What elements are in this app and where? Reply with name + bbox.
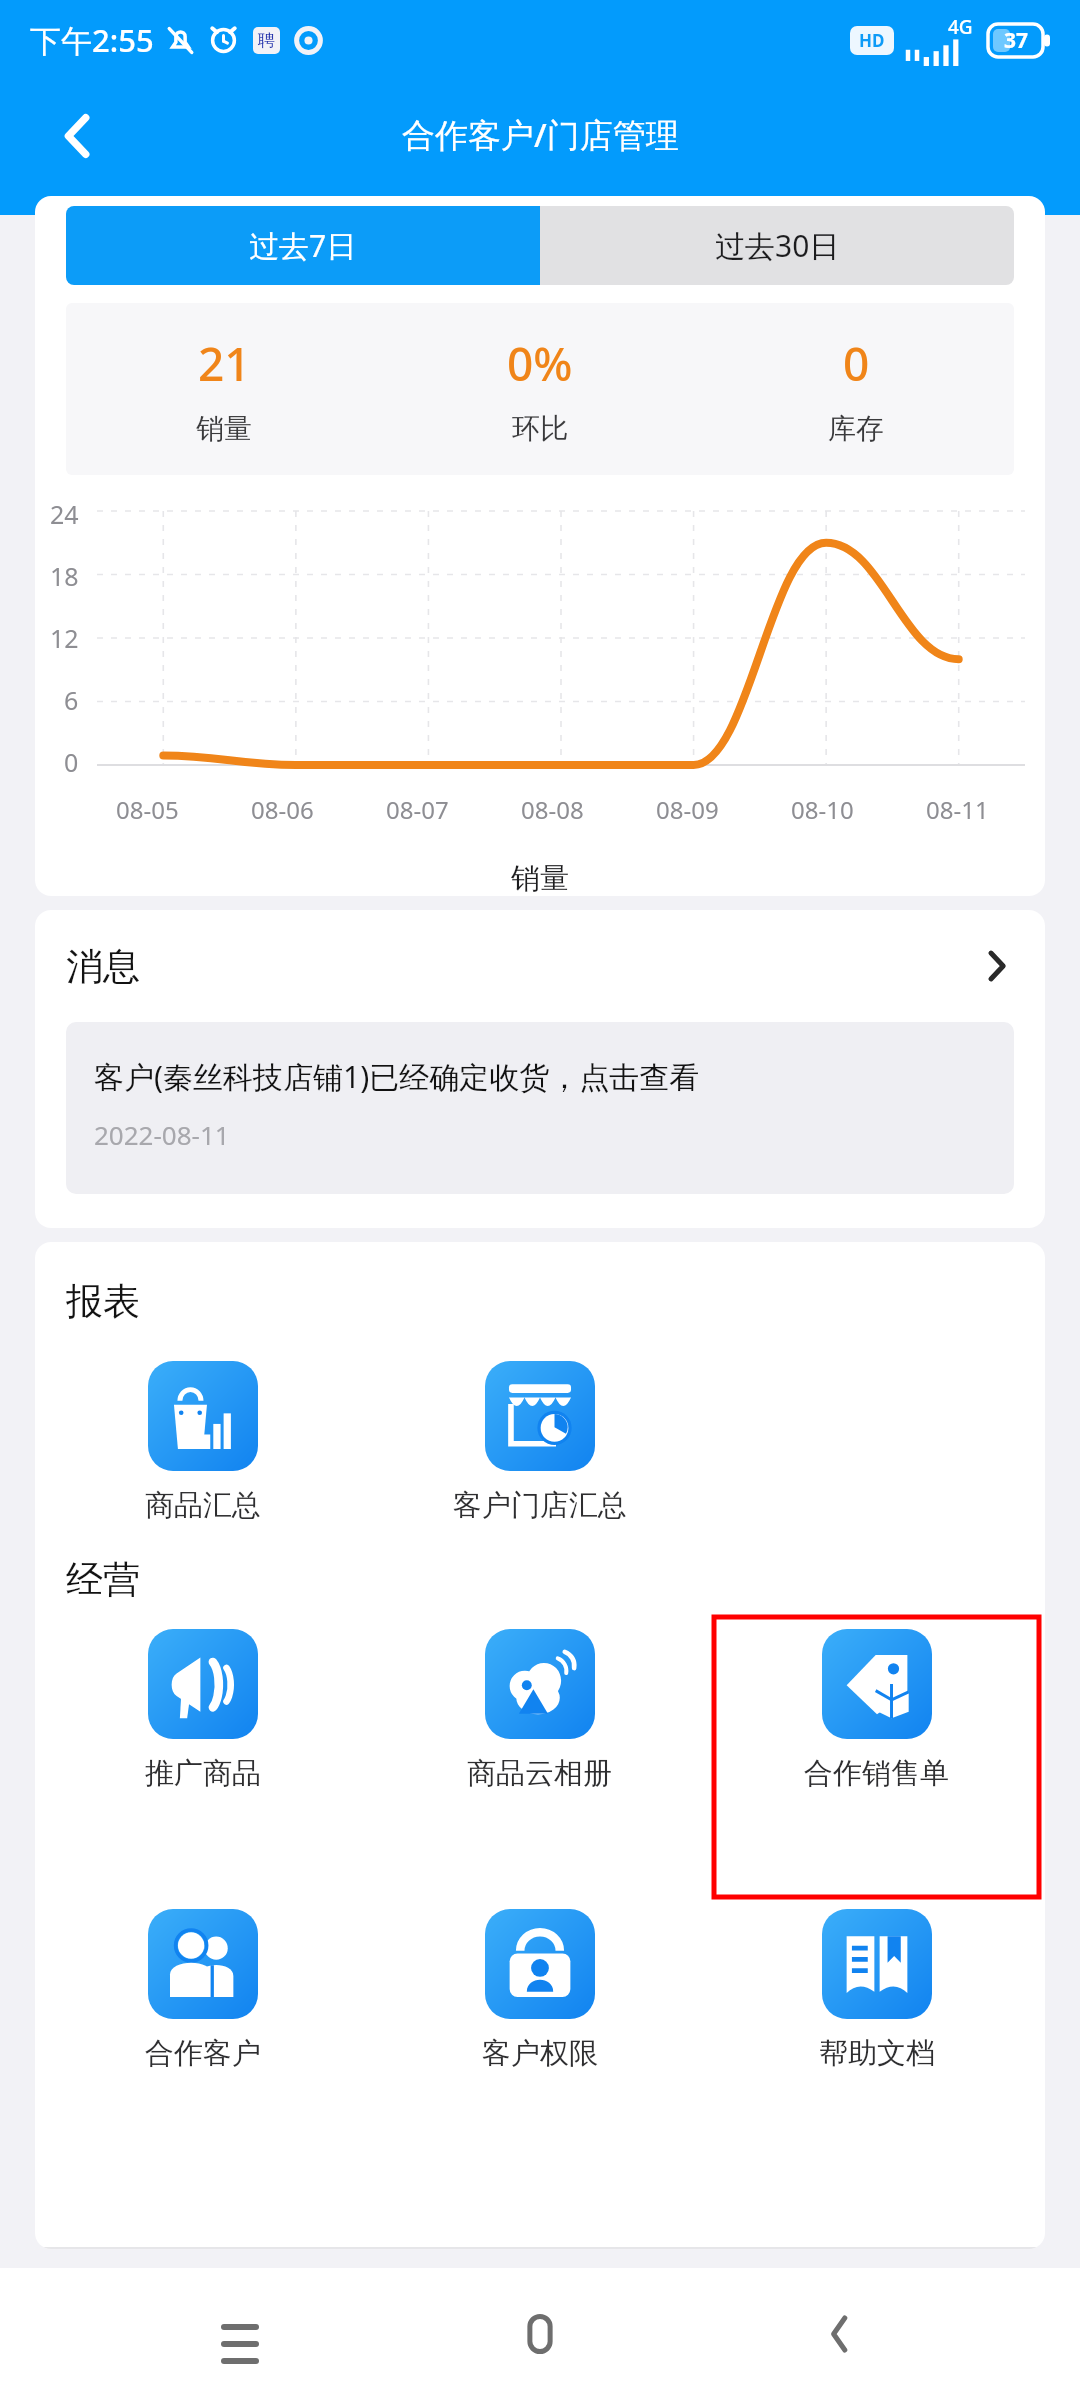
staticText: 客户门店汇总 (453, 1487, 627, 1524)
staticText: 4G (948, 14, 973, 40)
staticText: 库存 (828, 411, 884, 446)
staticText: 消息 (66, 943, 140, 990)
staticText: 客户权限 (482, 2035, 598, 2072)
staticText: 08-08 (521, 793, 584, 826)
staticText: HD (859, 29, 885, 52)
staticText: 2022-08-11 (94, 1117, 230, 1152)
staticText: 报表 (66, 1278, 140, 1325)
staticText: 销量 (196, 411, 252, 446)
staticText: 环比 (512, 411, 568, 446)
button[interactable]: 合作销售单 (714, 1617, 1039, 1897)
staticText: 0 (843, 332, 870, 395)
staticText: 37 (1004, 26, 1029, 55)
staticText: 商品汇总 (145, 1487, 261, 1524)
button[interactable]: 客户权限 (371, 1897, 708, 2084)
button[interactable]: 消息 (35, 910, 1045, 1022)
staticText: 08-11 (926, 793, 989, 826)
button[interactable]: 过去7日 (66, 206, 540, 285)
staticText: 6 (64, 683, 79, 717)
button[interactable]: Back (30, 88, 126, 184)
staticText: 12 (50, 621, 79, 655)
staticText: 0% (507, 332, 573, 395)
button[interactable]: 商品云相册 (371, 1617, 708, 1804)
staticText: 08-05 (116, 793, 179, 826)
button[interactable]: 推广商品 (35, 1617, 371, 1804)
button[interactable]: 合作客户 (35, 1897, 371, 2084)
staticText: 合作销售单 (804, 1755, 949, 1792)
staticText: 过去7日 (249, 225, 357, 266)
button[interactable]: 客户门店汇总 (371, 1349, 708, 1536)
staticText: 经营 (66, 1556, 140, 1603)
staticText: 08-10 (791, 793, 854, 826)
staticText: 24 (50, 497, 79, 531)
button[interactable]: Home (480, 2274, 600, 2394)
staticText: 08-07 (386, 793, 449, 826)
button[interactable]: 客户(秦丝科技店铺1)已经确定收货，点击查看 (66, 1022, 1014, 1194)
staticText: 推广商品 (145, 1755, 261, 1792)
staticText: 商品云相册 (467, 1755, 612, 1792)
staticText: 合作客户/门店管理 (402, 112, 679, 157)
button[interactable]: Recent apps (180, 2274, 300, 2394)
staticText: 0 (64, 745, 79, 779)
button[interactable]: 帮助文档 (708, 1897, 1045, 2084)
staticText: 过去30日 (715, 225, 840, 266)
staticText: 帮助文档 (819, 2035, 935, 2072)
staticText: 08-09 (656, 793, 719, 826)
staticText: 合作客户 (145, 2035, 261, 2072)
staticText: 下午2:55 (30, 19, 154, 61)
staticText: 21 (198, 332, 251, 395)
button[interactable]: Back (780, 2274, 900, 2394)
staticText: 08-06 (251, 793, 314, 826)
staticText: 销量 (511, 860, 569, 896)
staticText: 聘 (258, 30, 275, 51)
button[interactable]: 商品汇总 (35, 1349, 371, 1536)
staticText: 18 (50, 559, 79, 593)
button[interactable]: 过去30日 (540, 206, 1014, 285)
staticText: 客户(秦丝科技店铺1)已经确定收货，点击查看 (94, 1056, 700, 1097)
